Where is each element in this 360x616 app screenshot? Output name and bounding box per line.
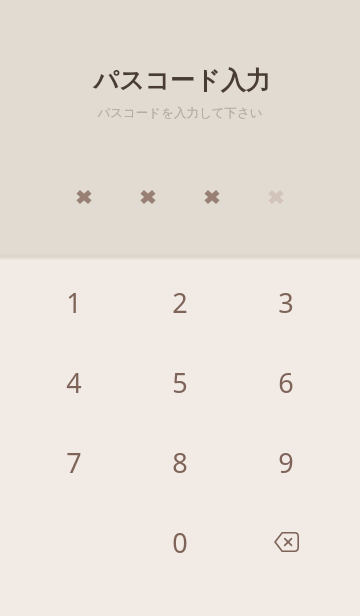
- staticText: 7: [66, 444, 82, 481]
- button[interactable]: 8: [127, 422, 233, 502]
- staticText: 1: [66, 284, 82, 321]
- staticText: 2: [172, 284, 188, 321]
- staticText: 4: [66, 364, 82, 401]
- button[interactable]: 5: [127, 342, 233, 422]
- staticText: 0: [172, 524, 188, 561]
- staticText: 5: [172, 364, 188, 401]
- button[interactable]: 0: [127, 502, 233, 582]
- staticText: パスコードを入力して下さい: [97, 105, 263, 121]
- button[interactable]: Delete: [233, 502, 339, 582]
- button[interactable]: 2: [127, 262, 233, 342]
- staticText: 6: [278, 364, 294, 401]
- button[interactable]: 7: [21, 422, 127, 502]
- staticText: 3: [278, 284, 294, 321]
- button[interactable]: 6: [233, 342, 339, 422]
- staticText: 8: [172, 444, 188, 481]
- button[interactable]: 3: [233, 262, 339, 342]
- staticText: パスコード入力: [93, 65, 271, 96]
- staticText: 9: [278, 444, 294, 481]
- button[interactable]: 1: [21, 262, 127, 342]
- button[interactable]: 9: [233, 422, 339, 502]
- button[interactable]: 4: [21, 342, 127, 422]
